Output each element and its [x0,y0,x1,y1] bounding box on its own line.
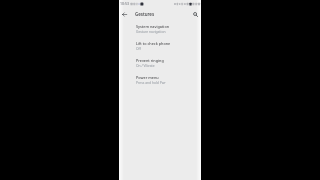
staticText: 10:53 [120,1,129,6]
button[interactable]: Prevent ringing [119,56,201,73]
staticText: Gesture navigation [136,29,166,33]
staticText: Gestures [135,11,155,17]
staticText: Prevent ringing [136,58,164,63]
button[interactable]: Back [119,9,130,20]
staticText: Power menu [136,75,159,80]
button[interactable]: Power menu [119,73,201,90]
staticText: System navigation [136,24,170,29]
staticText: Off [136,46,141,50]
button[interactable]: Search [190,9,201,20]
staticText: Press and hold Pwr [136,80,166,84]
staticText: Lift to check phone [136,41,171,46]
button[interactable]: Lift to check phone [119,39,201,56]
staticText: On / Vibrate [136,63,155,67]
button[interactable]: System navigation [119,22,201,39]
